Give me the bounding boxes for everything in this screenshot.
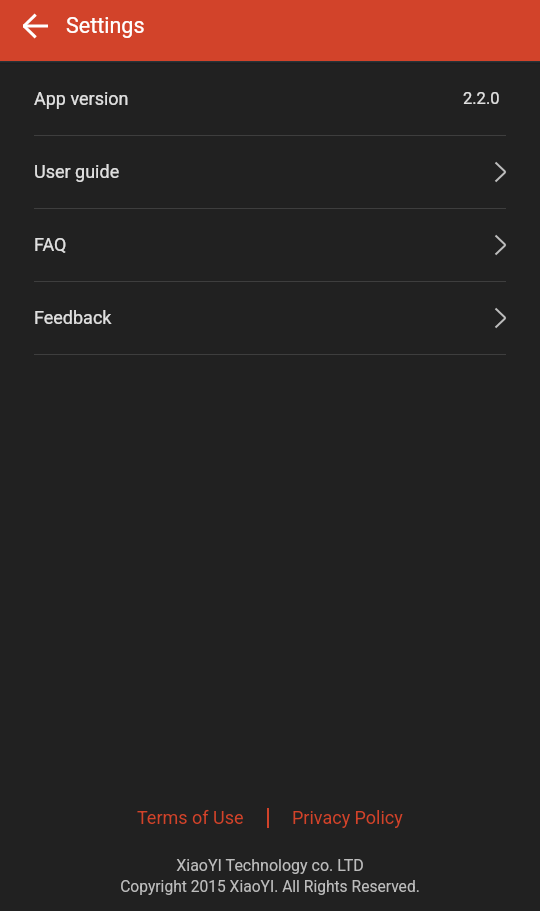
staticText: FAQ [34,234,67,255]
button[interactable]: FAQ [0,209,540,281]
button[interactable]: User guide [0,136,540,208]
button[interactable]: Feedback [0,282,540,354]
staticText: User guide [34,161,120,182]
button[interactable]: App version [0,64,540,135]
staticText: XiaoYI Technology co. LTD [0,856,540,875]
staticText: Settings [66,13,145,38]
button[interactable]: Back [12,2,60,50]
staticText: 2.2.0 [463,89,500,108]
staticText: App version [34,88,129,109]
staticText: Feedback [34,307,112,328]
staticText: Copyright 2015 XiaoYI. All Rights Reserv… [0,878,540,896]
button[interactable]: Privacy Policy [290,807,405,828]
button[interactable]: Terms of Use [135,807,246,828]
